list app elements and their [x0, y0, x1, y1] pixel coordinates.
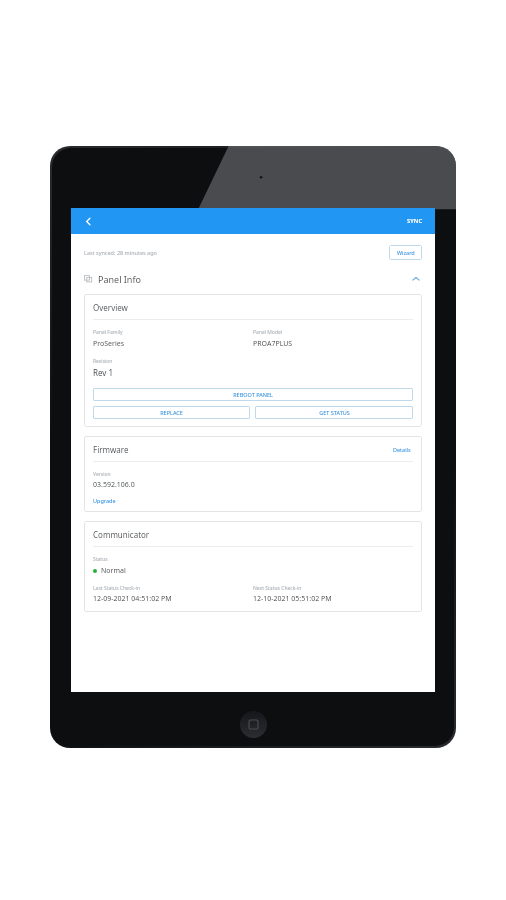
staticText: ProSeries: [93, 339, 125, 349]
button[interactable]: SYNC: [404, 214, 426, 228]
staticText: Details: [393, 446, 411, 453]
staticText: PROA7PLUS: [253, 339, 293, 349]
button[interactable]: Wizard: [389, 245, 422, 260]
staticText: Overview: [93, 302, 128, 313]
staticText: Status: [93, 556, 108, 563]
staticText: 12-10-2021 05:51:02 PM: [253, 594, 332, 604]
staticText: Upgrade: [93, 497, 116, 504]
staticText: GET STATUS: [319, 409, 350, 416]
button[interactable]: Details: [391, 444, 413, 455]
staticText: REBOOT PANEL: [233, 391, 273, 398]
staticText: 03.592.106.0: [93, 480, 135, 490]
button[interactable]: GET STATUS: [255, 406, 413, 419]
other: Home: [240, 711, 267, 738]
button[interactable]: REPLACE: [93, 406, 250, 419]
staticText: Revision: [93, 358, 113, 365]
staticText: REPLACE: [160, 409, 183, 416]
staticText: Panel Info: [98, 273, 141, 285]
staticText: Rev 1: [93, 367, 114, 378]
button[interactable]: Back: [80, 213, 96, 229]
staticText: Firmware: [93, 444, 129, 455]
staticText: Normal: [101, 566, 126, 576]
button[interactable]: Panel Info: [84, 272, 422, 285]
staticText: Next Status Check-in: [253, 585, 302, 592]
staticText: Panel Model: [253, 329, 283, 336]
staticText: Last synced: 28 minutes ago: [84, 249, 157, 256]
staticText: Panel Family: [93, 329, 123, 336]
staticText: Communicator: [93, 529, 150, 540]
staticText: 12-09-2021 04:51:02 PM: [93, 594, 172, 604]
staticText: SYNC: [407, 217, 423, 225]
button[interactable]: Upgrade: [93, 497, 116, 504]
other: Collapse: [409, 272, 422, 285]
staticText: Last Status Check-in: [93, 585, 141, 592]
staticText: Version: [93, 471, 111, 478]
staticText: Wizard: [397, 249, 415, 256]
button[interactable]: REBOOT PANEL: [93, 388, 413, 401]
